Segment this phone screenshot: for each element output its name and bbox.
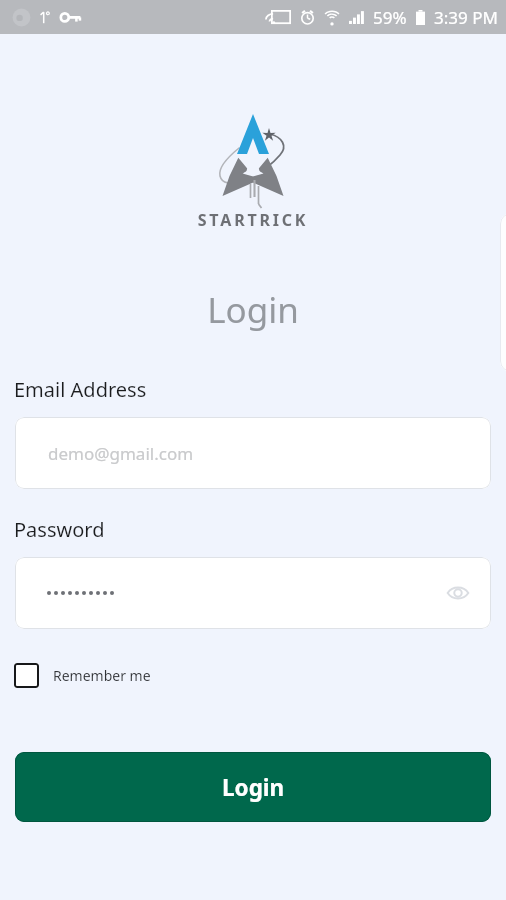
staticText: 59%: [373, 6, 407, 29]
button[interactable]: Show password: [15, 557, 491, 629]
button[interactable]: Remember me: [8, 657, 161, 694]
staticText: Password: [14, 516, 105, 543]
staticText: Remember me: [53, 666, 151, 685]
staticText: demo@gmail.com: [48, 442, 194, 465]
button[interactable]: Show password: [443, 578, 473, 608]
button[interactable]: Login: [15, 752, 491, 822]
staticText: 3:39 PM: [434, 6, 498, 29]
button[interactable]: demo@gmail.com: [15, 417, 491, 489]
staticText: Email Address: [14, 376, 147, 403]
staticText: STARTRICK: [0, 209, 506, 231]
staticText: Login: [222, 772, 285, 803]
staticText: Login: [0, 286, 506, 334]
